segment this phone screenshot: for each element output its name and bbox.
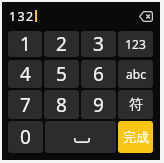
staticText: 1 [20,31,31,57]
button[interactable]: Backspace [135,6,157,28]
button[interactable]: abc [118,60,153,88]
staticText: 2 [56,31,67,57]
staticText: 4 [20,61,31,87]
button[interactable]: Space [45,121,116,153]
button[interactable]: 8 [44,90,79,119]
button[interactable]: 6 [81,60,116,88]
staticText: abc [126,66,146,82]
button[interactable]: 2 [44,31,79,57]
staticText: 123 [125,36,146,52]
button[interactable]: 5 [44,60,79,88]
staticText: 符 [129,96,143,114]
button[interactable]: 4 [8,60,42,88]
staticText: 5 [56,61,67,87]
button[interactable]: 9 [81,90,116,119]
button[interactable]: 7 [8,90,42,119]
button[interactable]: 0 [8,121,43,153]
staticText: 7 [20,92,31,118]
button[interactable]: 完成 [118,121,153,153]
staticText: 132 [9,8,35,25]
staticText: 完成 [123,129,149,145]
button[interactable]: 3 [81,31,116,57]
button[interactable]: 123 [118,31,153,57]
staticText: 3 [93,31,104,57]
staticText: 6 [93,61,104,87]
staticText: 0 [20,124,31,150]
button[interactable]: 符 [118,90,153,119]
staticText: 9 [93,92,104,118]
staticText: 8 [56,92,67,118]
button[interactable]: 1 [8,31,42,57]
